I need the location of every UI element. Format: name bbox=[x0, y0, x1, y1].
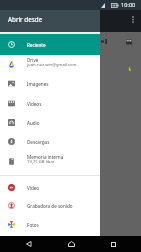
button[interactable]: Grabadora de sonido bbox=[0, 196, 100, 215]
button[interactable]: Recents bbox=[98, 236, 128, 252]
button[interactable]: Back bbox=[13, 236, 43, 252]
staticText: Reciente bbox=[27, 42, 46, 48]
staticText: juan.ruiz.win@gmail.com bbox=[27, 62, 77, 68]
button[interactable]: Vídeo bbox=[0, 178, 100, 197]
button[interactable]: Reciente bbox=[0, 34, 100, 55]
button[interactable]: Imágenes bbox=[0, 74, 100, 93]
button[interactable]: Descargas bbox=[0, 132, 100, 151]
button[interactable]: Audio bbox=[0, 113, 100, 132]
button[interactable]: Drive bbox=[0, 55, 100, 74]
button[interactable]: Vídeos bbox=[0, 94, 100, 113]
staticText: Vídeos bbox=[27, 101, 42, 107]
button[interactable]: Memoria interna bbox=[0, 152, 100, 171]
button[interactable]: More options bbox=[127, 14, 138, 25]
staticText: Abrir desde bbox=[8, 15, 43, 24]
staticText: Vídeo bbox=[27, 185, 40, 191]
staticText: Grabadora de sonido bbox=[27, 203, 73, 209]
staticText: Descargas bbox=[27, 139, 50, 145]
staticText: Drive bbox=[27, 57, 39, 63]
staticText: Fotos bbox=[27, 222, 39, 228]
staticText: Imágenes bbox=[27, 81, 49, 87]
staticText: 10:00 bbox=[121, 1, 136, 9]
staticText: 19,71 GB libre bbox=[27, 159, 55, 165]
staticText: Memoria interna bbox=[27, 154, 64, 160]
button[interactable]: Home bbox=[56, 236, 86, 252]
staticText: Audio bbox=[27, 120, 40, 126]
button[interactable]: Fotos bbox=[0, 215, 100, 234]
